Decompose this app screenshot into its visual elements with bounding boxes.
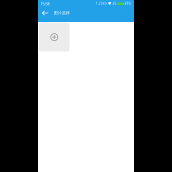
- button[interactable]: Back: [40, 8, 50, 18]
- staticText: 15:58: [40, 1, 49, 6]
- staticText: 图片选择: [54, 10, 70, 15]
- staticText: 4G: [112, 2, 116, 5]
- staticText: 88%: [124, 2, 130, 5]
- button[interactable]: Add photo: [39, 23, 69, 52]
- staticText: 1.29K/s: [96, 2, 107, 5]
